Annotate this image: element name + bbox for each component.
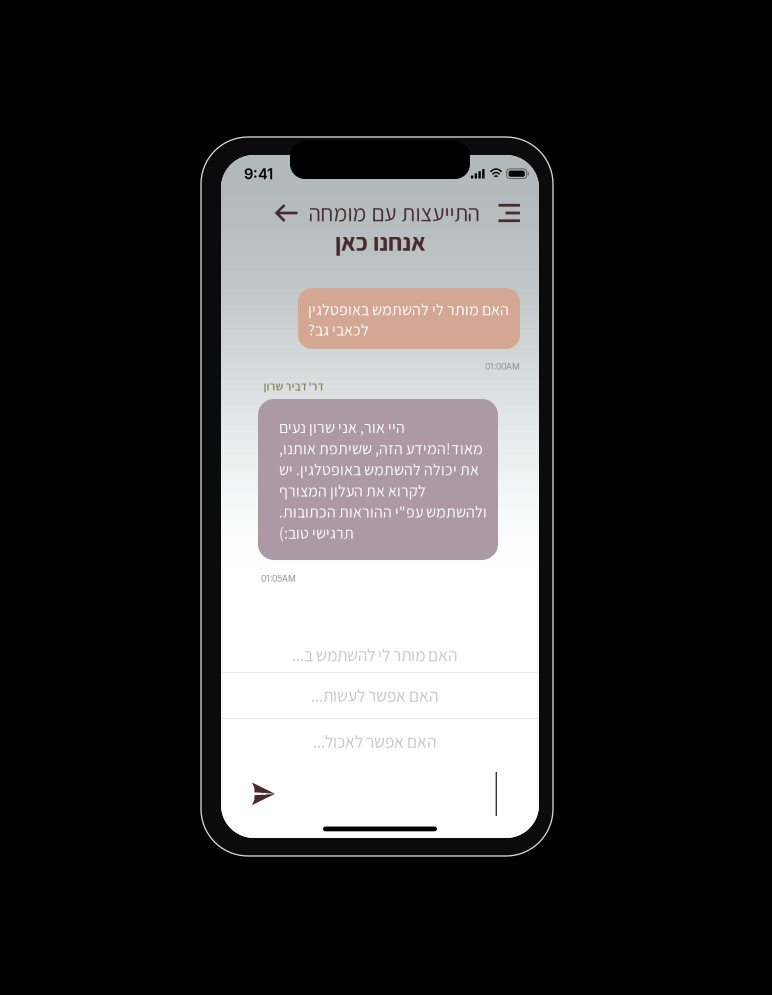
staticText: האם אפשר לעשות...: [310, 684, 437, 707]
button[interactable]: Menu: [495, 198, 523, 228]
staticText: התייעצות עם מומחה: [308, 198, 479, 228]
staticText: האם אפשר לאכול...: [312, 730, 435, 753]
button[interactable]: Send: [243, 773, 284, 814]
staticText: אנחנו כאן: [334, 226, 425, 258]
button[interactable]: האם אפשר לעשות...: [215, 673, 533, 718]
staticText: היי אור, אני שרון נעים מאוד!המידע הזה, ש…: [279, 417, 487, 543]
button[interactable]: Back: [269, 198, 304, 227]
staticText: 9:41: [244, 165, 273, 183]
button[interactable]: האם מותר לי להשתמש ב...: [215, 633, 533, 677]
staticText: 01:00AM: [485, 361, 520, 372]
button[interactable]: האם אפשר לאכול...: [215, 719, 533, 764]
staticText: האם מותר לי להשתמש ב...: [291, 644, 456, 666]
staticText: דר' דביר שרון: [263, 378, 323, 394]
staticText: 01:05AM: [261, 573, 296, 584]
staticText: האם מותר לי להשתמש באופטלגין לכאבי גב?: [308, 299, 509, 340]
